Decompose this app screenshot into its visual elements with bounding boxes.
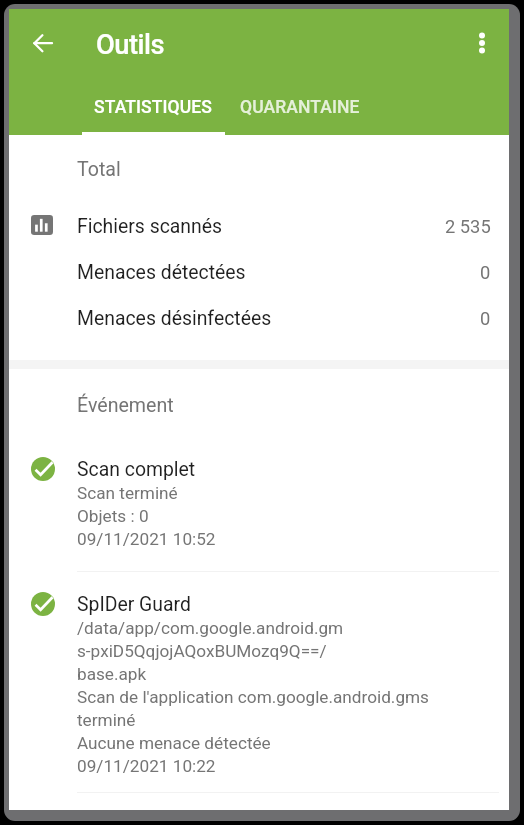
staticText: Menaces désinfectées	[77, 307, 272, 330]
staticText: 0	[480, 262, 491, 283]
staticText: Outils	[96, 29, 165, 61]
staticText: STATISTIQUES	[94, 97, 213, 118]
staticText: QUARANTAINE	[240, 97, 360, 118]
staticText: Scan terminé Objets : 0 09/11/2021 10:52	[77, 483, 216, 549]
staticText: /data/app/com.google.android.gm s-pxiD5Q…	[77, 618, 429, 776]
button[interactable]: Back	[19, 22, 67, 64]
staticText: Fichiers scannés	[77, 215, 223, 238]
button[interactable]: QUARANTAINE	[225, 79, 375, 135]
button[interactable]: Scan complet	[9, 459, 509, 594]
button[interactable]: More options	[458, 22, 506, 64]
button[interactable]: Fichiers scannés	[9, 203, 509, 249]
staticText: 2 535	[445, 216, 491, 237]
staticText: SpIDer Guard	[77, 593, 191, 616]
staticText: 0	[480, 308, 491, 329]
button[interactable]: Menaces désinfectées	[9, 295, 509, 341]
staticText: Total	[77, 158, 121, 181]
button[interactable]: SpIDer Guard	[9, 594, 509, 813]
button[interactable]: STATISTIQUES	[82, 79, 225, 135]
staticText: Événement	[77, 394, 174, 417]
staticText: Scan complet	[77, 458, 196, 481]
staticText: Menaces détectées	[77, 261, 246, 284]
button[interactable]: Menaces détectées	[9, 249, 509, 295]
